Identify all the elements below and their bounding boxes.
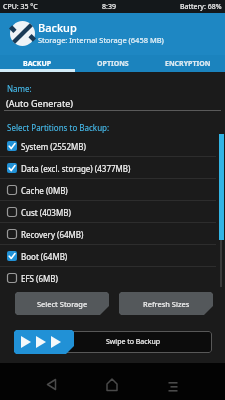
button[interactable]: System (2552MB) bbox=[0, 135, 225, 157]
button[interactable]: Boot (64MB) bbox=[0, 245, 225, 267]
staticText: ENCRYPTION bbox=[165, 59, 211, 69]
button[interactable]: Cust (403MB) bbox=[0, 201, 225, 223]
staticText: OPTIONS bbox=[97, 59, 129, 69]
staticText: System (2552MB) bbox=[21, 141, 86, 152]
staticText: Backup bbox=[38, 20, 77, 35]
staticText: Storage: Internal Storage (6458 MB) bbox=[38, 35, 164, 45]
staticText: Boot (64MB) bbox=[21, 251, 68, 262]
button[interactable]: OPTIONS bbox=[75, 55, 150, 72]
staticText: Refresh Sizes bbox=[143, 299, 190, 309]
staticText: Select Storage bbox=[37, 299, 88, 309]
button[interactable]: ENCRYPTION bbox=[150, 55, 225, 72]
staticText: Select Partitions to Backup: bbox=[7, 122, 110, 133]
staticText: Cache (0MB) bbox=[21, 185, 68, 196]
staticText: Cust (403MB) bbox=[21, 207, 71, 218]
button[interactable]: Recovery (64MB) bbox=[0, 223, 225, 245]
button[interactable]: BACKUP bbox=[0, 55, 75, 72]
button[interactable]: Data (excl. storage) (4377MB) bbox=[0, 157, 225, 179]
staticText: BACKUP bbox=[23, 59, 52, 69]
button[interactable]: Refresh Sizes bbox=[119, 292, 213, 315]
staticText: CPU: 35 °C bbox=[3, 2, 38, 12]
button[interactable]: Swipe to Backup bbox=[14, 331, 212, 353]
staticText: Battery: 68% bbox=[180, 2, 222, 12]
button[interactable] bbox=[162, 375, 184, 393]
staticText: Name: bbox=[7, 83, 32, 94]
staticText: (Auto Generate) bbox=[6, 97, 73, 109]
button[interactable] bbox=[101, 375, 123, 393]
staticText: Data (excl. storage) (4377MB) bbox=[21, 163, 131, 174]
button[interactable]: EFS (6MB) bbox=[0, 267, 225, 289]
button[interactable]: Cache (0MB) bbox=[0, 179, 225, 201]
staticText: EFS (6MB) bbox=[21, 273, 58, 284]
staticText: Swipe to Backup bbox=[106, 337, 161, 347]
staticText: Recovery (64MB) bbox=[21, 229, 84, 240]
button[interactable]: Select Storage bbox=[15, 292, 109, 315]
staticText: 8:39 bbox=[102, 2, 116, 12]
button[interactable] bbox=[40, 375, 62, 393]
